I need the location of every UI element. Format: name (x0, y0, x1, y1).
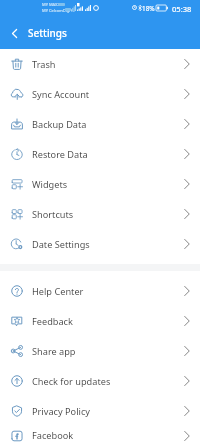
button[interactable]: Shortcuts (0, 199, 200, 229)
staticText: Shortcuts (32, 208, 74, 221)
button[interactable]: Check for updates (0, 366, 200, 396)
button[interactable]: Privacy Policy (0, 396, 200, 426)
staticText: 18% (142, 4, 155, 13)
button[interactable]: Date Settings (0, 229, 200, 259)
staticText: Feedback (32, 315, 73, 328)
staticText: Restore Data (32, 148, 88, 161)
staticText: MY MAXIS (42, 2, 62, 7)
staticText: Share app (32, 345, 76, 358)
button[interactable]: Backup Data (0, 109, 200, 139)
button[interactable]: Sync Account (0, 79, 200, 109)
staticText: Privacy Policy (32, 405, 90, 418)
staticText: Trash (32, 58, 56, 71)
button[interactable]: Trash (0, 49, 200, 79)
staticText: Settings (28, 26, 67, 40)
staticText: MY CelcomDigi ... (42, 8, 75, 13)
staticText: Backup Data (32, 118, 87, 131)
staticText: Sync Account (32, 88, 90, 101)
staticText: Help Center (32, 285, 84, 298)
staticText: Check for updates (32, 375, 111, 388)
button[interactable]: Share app (0, 336, 200, 366)
staticText: Facebook (32, 429, 74, 442)
button[interactable]: Widgets (0, 169, 200, 199)
button[interactable]: Back (0, 18, 28, 49)
button[interactable]: Facebook (0, 426, 200, 445)
staticText: 05:38 (172, 4, 192, 14)
staticText: Widgets (32, 178, 68, 191)
button[interactable]: Restore Data (0, 139, 200, 169)
button[interactable]: Feedback (0, 306, 200, 336)
button[interactable]: Help Center (0, 276, 200, 306)
staticText: Date Settings (32, 238, 90, 251)
